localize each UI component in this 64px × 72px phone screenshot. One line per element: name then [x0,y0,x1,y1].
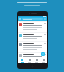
button[interactable] [18,42,47,52]
button[interactable]: Tab 3 [33,59,40,63]
button[interactable] [18,33,47,41]
button[interactable]: Compose [41,52,45,56]
button[interactable]: Tab 1 [18,59,26,63]
button[interactable] [18,22,47,32]
button[interactable]: Tab 4 [40,59,47,63]
button[interactable]: Home [31,65,34,68]
button[interactable]: Tab 2 [26,59,33,63]
button[interactable]: Menu [18,17,47,21]
button[interactable] [18,53,47,59]
